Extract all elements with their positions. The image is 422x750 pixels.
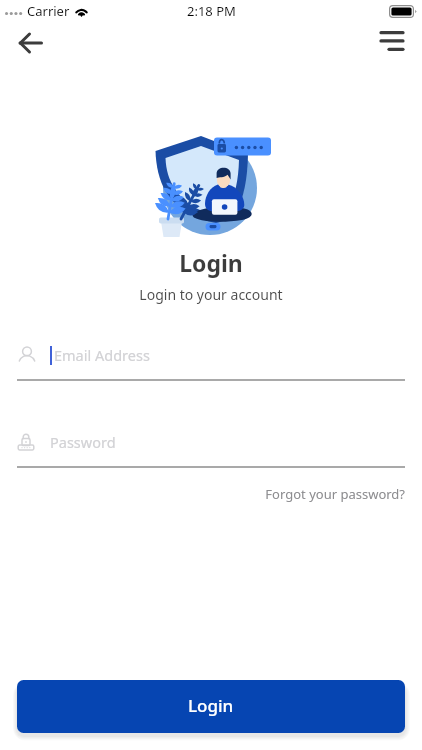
staticText: Login — [188, 694, 234, 717]
staticText: 2:18 PM — [187, 2, 236, 20]
button[interactable]: Forgot your password? — [0, 485, 405, 503]
staticText: Carrier — [27, 2, 70, 20]
button[interactable]: Menu — [371, 20, 413, 62]
button[interactable]: Back — [10, 22, 52, 64]
staticText: Email Address — [54, 345, 150, 365]
button[interactable]: Login — [17, 680, 405, 733]
staticText: Login to your account — [0, 285, 422, 304]
staticText: Login — [0, 247, 422, 278]
staticText: Password — [50, 432, 116, 452]
